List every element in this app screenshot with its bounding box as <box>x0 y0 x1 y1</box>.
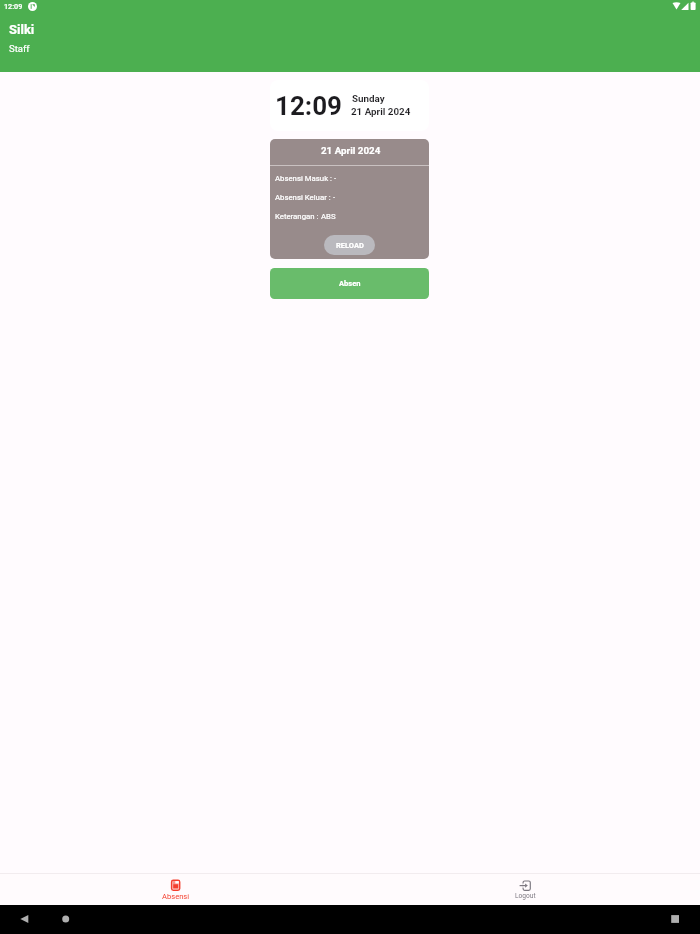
staticText: 12:09 <box>275 91 343 121</box>
staticText: - <box>334 174 337 183</box>
staticText: Absensi Masuk : <box>275 174 332 183</box>
button[interactable]: Absensi <box>0 874 350 905</box>
staticText: Sunday <box>352 93 385 104</box>
staticText: - <box>333 193 336 202</box>
staticText: 21 April 2024 <box>321 145 381 156</box>
other: Logout <box>519 880 531 891</box>
other: Absensi <box>171 880 180 891</box>
staticText: Absen <box>339 279 361 288</box>
staticText: Staff <box>9 43 30 54</box>
staticText: Absensi Keluar : <box>275 193 331 202</box>
button[interactable]: Logout <box>350 874 700 905</box>
staticText: RELOAD <box>336 241 364 250</box>
staticText: ABS <box>321 212 336 221</box>
staticText: Absensi <box>162 892 190 901</box>
staticText: 21 April 2024 <box>351 106 411 117</box>
staticText: Logout <box>515 892 536 900</box>
button[interactable]: RELOAD <box>324 235 375 255</box>
button[interactable]: Absen <box>270 268 429 299</box>
staticText: Keterangan : <box>275 212 319 221</box>
staticText: Silki <box>9 22 35 37</box>
staticText: 12:09 <box>4 2 23 10</box>
